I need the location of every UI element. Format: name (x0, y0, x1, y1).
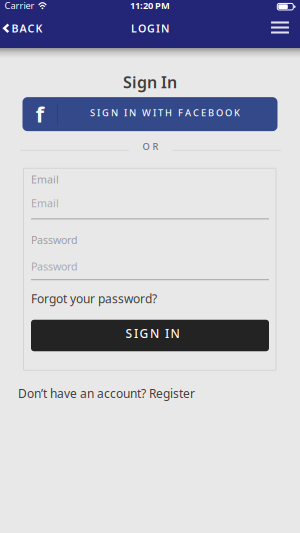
staticText: Don’t have an account? (18, 385, 146, 401)
staticText: OR (143, 140, 158, 152)
staticText: Email (31, 172, 59, 186)
button[interactable]: SIGN IN (31, 320, 269, 351)
button[interactable]: f (22, 97, 277, 131)
staticText: f (36, 100, 44, 128)
staticText: SIGN IN (125, 325, 179, 341)
staticText: S I G N I N W I T H F A C E B O O K (90, 106, 240, 119)
button[interactable]: Register (149, 385, 195, 401)
staticText: Sign In (123, 71, 177, 93)
staticText: Carrier (4, 0, 34, 12)
button[interactable]: Menu (271, 21, 300, 35)
staticText: Register (149, 385, 195, 401)
staticText: Forgot your password? (31, 291, 157, 307)
staticText: Password (31, 259, 78, 273)
staticText: B A C K (11, 21, 42, 35)
staticText: Email (31, 196, 59, 210)
button[interactable]: Forgot your password? (31, 291, 157, 307)
staticText: L O G I N (131, 21, 169, 35)
button[interactable]: Password (31, 259, 269, 280)
button[interactable]: Email (31, 196, 269, 219)
staticText: 11:20 PM (130, 0, 170, 12)
button[interactable]: B A C K (0, 21, 42, 35)
staticText: Password (31, 233, 78, 247)
